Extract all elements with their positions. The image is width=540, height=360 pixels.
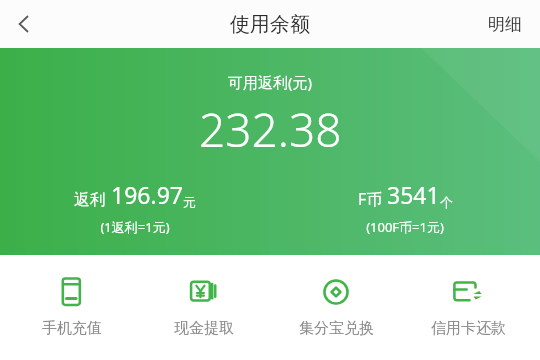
button[interactable]: 集分宝兑换 (276, 271, 396, 342)
staticText: 使用余额 (230, 12, 310, 37)
staticText: 196.97 (111, 179, 183, 210)
staticText: 可用返利(元) (228, 72, 313, 92)
staticText: 元 (183, 194, 196, 210)
button[interactable]: 信用卡还款 (408, 271, 528, 342)
staticText: 返利 (74, 188, 111, 210)
button[interactable]: 手机充值 (12, 271, 132, 342)
button[interactable]: 现金提取 (144, 271, 264, 342)
button[interactable]: Back (0, 0, 48, 48)
button[interactable]: 明细 (470, 4, 540, 45)
staticText: 集分宝兑换 (299, 319, 374, 338)
staticText: 个 (440, 194, 453, 210)
staticText: 232.38 (199, 98, 342, 161)
staticText: 现金提取 (174, 319, 234, 338)
staticText: 3541 (387, 179, 440, 210)
staticText: F币 (358, 188, 387, 210)
staticText: 手机充值 (42, 319, 102, 338)
staticText: 明细 (488, 14, 522, 35)
staticText: (1返利=1元) (100, 218, 170, 236)
staticText: (100F币=1元) (366, 218, 444, 236)
staticText: 信用卡还款 (431, 319, 506, 338)
